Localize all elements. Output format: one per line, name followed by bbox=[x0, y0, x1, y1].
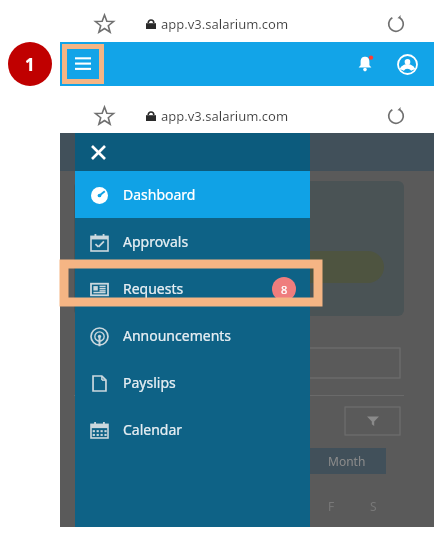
button[interactable]: Bookmark bbox=[88, 8, 120, 40]
button[interactable]: Close menu bbox=[83, 137, 113, 167]
button[interactable]: Account bbox=[390, 47, 424, 81]
staticText: Calendar bbox=[123, 420, 183, 439]
staticText: S bbox=[370, 498, 377, 514]
button[interactable]: Open navigation menu bbox=[67, 49, 99, 79]
staticText: app.v3.salarium.com bbox=[161, 15, 289, 33]
staticText: 1 bbox=[25, 53, 35, 76]
button[interactable]: Calendar bbox=[75, 406, 310, 453]
staticText: clock-ins and clock-outs bbox=[180, 325, 302, 340]
button[interactable]: Reload bbox=[380, 8, 412, 40]
staticText: Payslips bbox=[123, 373, 176, 392]
button[interactable]: Dashboard bbox=[75, 171, 310, 218]
button[interactable]: app.v3.salarium.com bbox=[146, 15, 289, 33]
staticText: Announcements bbox=[123, 326, 232, 345]
button[interactable]: Requests bbox=[75, 265, 310, 312]
staticText: Approvals bbox=[123, 232, 189, 251]
staticText: F bbox=[328, 498, 335, 514]
staticText: Month bbox=[328, 453, 366, 469]
button[interactable]: app.v3.salarium.com bbox=[146, 107, 289, 125]
button[interactable]: Payslips bbox=[75, 359, 310, 406]
button[interactable]: Approvals bbox=[75, 218, 310, 265]
button[interactable]: Bookmark bbox=[88, 100, 120, 132]
button[interactable]: Announcements bbox=[75, 312, 310, 359]
button[interactable]: Reload bbox=[380, 100, 412, 132]
staticText: Dashboard bbox=[123, 185, 196, 204]
staticText: 8 bbox=[281, 282, 288, 297]
staticText: app.v3.salarium.com bbox=[161, 107, 289, 125]
button[interactable]: Notifications bbox=[348, 47, 382, 81]
staticText: Requests bbox=[123, 279, 184, 298]
